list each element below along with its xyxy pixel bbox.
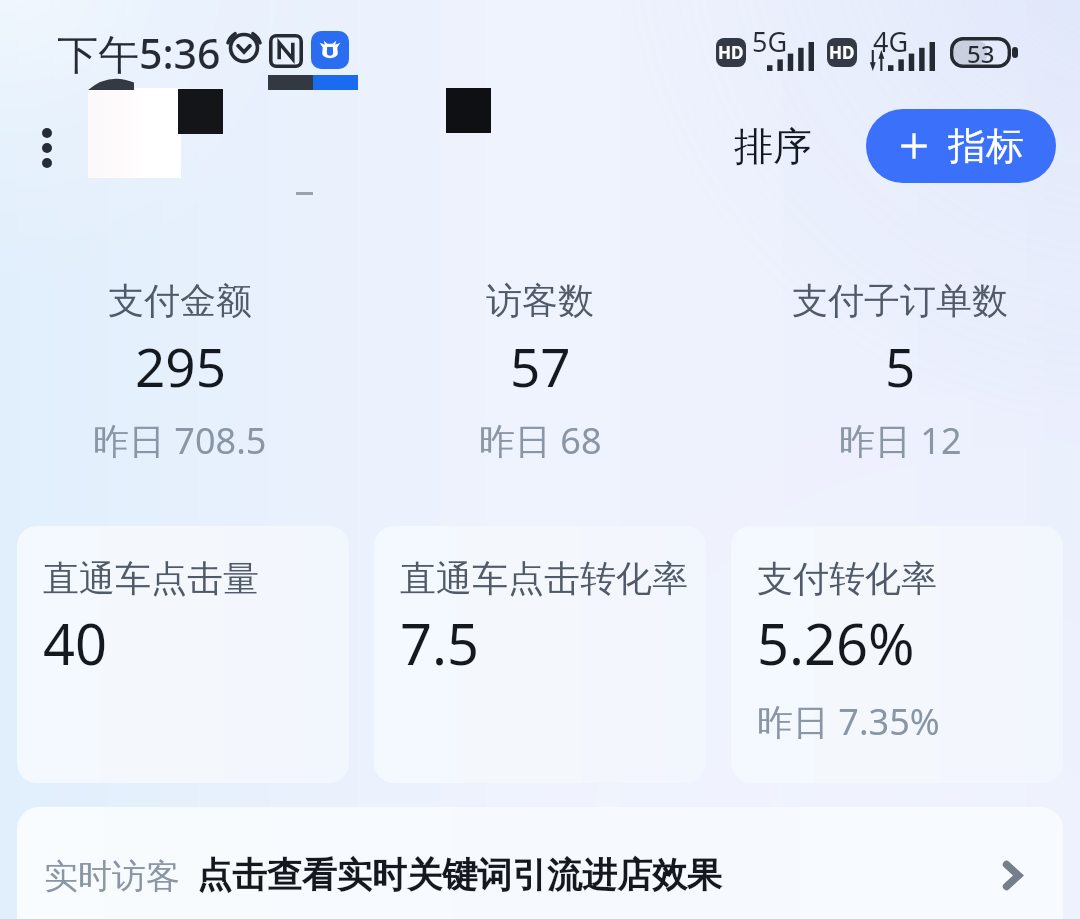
button[interactable]: 排序 xyxy=(734,122,812,171)
staticText: 直通车点击量 xyxy=(43,556,259,601)
staticText: 5.26% xyxy=(757,605,915,681)
staticText: 实时访客 xyxy=(44,855,180,898)
staticText: 40 xyxy=(43,605,108,681)
staticText: HD xyxy=(718,41,744,64)
staticText: 昨日 7.35% xyxy=(757,697,940,746)
staticText: 5G xyxy=(752,23,788,60)
staticText: 5 xyxy=(885,330,916,402)
staticText: 295 xyxy=(135,330,226,402)
staticText: 点击查看实时关键词引流进店效果 xyxy=(197,853,722,897)
staticText: 支付转化率 xyxy=(757,556,937,601)
staticText: 昨日 12 xyxy=(839,416,962,465)
button[interactable]: 实时访客 xyxy=(17,807,1063,919)
button[interactable]: 访客数 xyxy=(360,278,720,465)
staticText: 指标 xyxy=(948,122,1024,170)
staticText: 53 xyxy=(967,37,995,68)
staticText: 57 xyxy=(510,330,571,402)
button[interactable]: 指标 xyxy=(866,109,1056,183)
staticText: 7.5 xyxy=(400,605,480,681)
staticText: 下午5:36 xyxy=(57,25,221,81)
button[interactable]: 支付转化率 xyxy=(731,526,1063,783)
button[interactable]: 支付金额 xyxy=(0,278,360,465)
staticText: HD xyxy=(829,41,855,64)
button[interactable]: 直通车点击转化率 xyxy=(374,526,706,783)
staticText: 支付金额 xyxy=(108,278,252,323)
staticText: 4G xyxy=(873,23,909,60)
staticText: 昨日 68 xyxy=(479,416,602,465)
staticText: 昨日 708.5 xyxy=(93,416,267,465)
staticText: 访客数 xyxy=(486,278,594,323)
staticText: 排序 xyxy=(734,122,812,171)
staticText: 支付子订单数 xyxy=(792,278,1008,323)
button[interactable]: More options xyxy=(28,120,66,176)
button[interactable]: 直通车点击量 xyxy=(17,526,349,783)
staticText: 直通车点击转化率 xyxy=(400,556,688,601)
button[interactable]: 支付子订单数 xyxy=(720,278,1080,465)
